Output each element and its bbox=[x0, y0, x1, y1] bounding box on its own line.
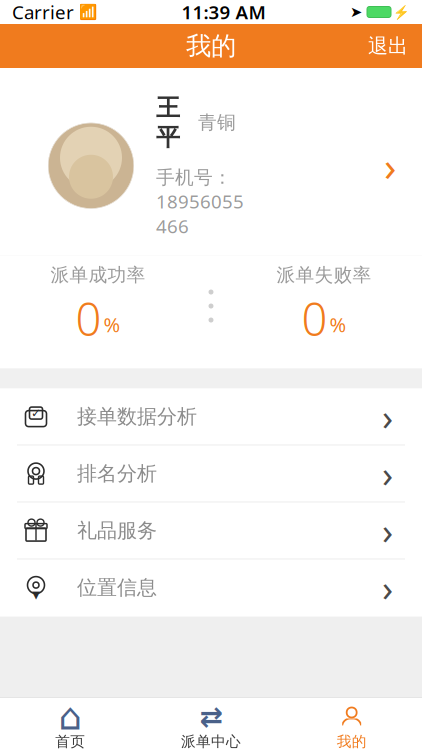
button[interactable]: ⌂ bbox=[0, 697, 141, 750]
staticText: 首页 bbox=[55, 732, 85, 750]
button[interactable]: ✓ bbox=[0, 389, 422, 446]
staticText: 礼品服务 bbox=[77, 518, 157, 543]
staticText: 0 bbox=[301, 288, 327, 349]
staticText: › bbox=[382, 450, 393, 497]
staticText: › bbox=[382, 564, 393, 611]
staticText: ➤ bbox=[350, 4, 362, 20]
staticText: % bbox=[329, 311, 346, 338]
staticText: ⇄ bbox=[199, 701, 222, 732]
button[interactable]: 退出 bbox=[354, 24, 422, 68]
staticText: 手机号：18956055466 bbox=[156, 166, 244, 238]
staticText: 11:39 AM bbox=[181, 0, 265, 24]
staticText: 接单数据分析 bbox=[77, 404, 197, 429]
staticText: ⌂ bbox=[58, 695, 82, 738]
staticText: 我的 bbox=[186, 30, 236, 61]
staticText: ✓ bbox=[31, 406, 41, 420]
staticText: 排名分析 bbox=[77, 461, 157, 486]
staticText: › bbox=[384, 139, 396, 192]
staticText: % bbox=[103, 311, 120, 338]
button[interactable]: 礼品服务 bbox=[0, 503, 422, 560]
staticText: 王平 bbox=[156, 93, 180, 152]
staticText: 0 bbox=[75, 288, 101, 349]
staticText: › bbox=[382, 393, 393, 440]
staticText: ⚡ bbox=[393, 4, 410, 20]
staticText: 我的 bbox=[337, 732, 367, 750]
staticText: 青铜 bbox=[198, 111, 236, 134]
button[interactable]: 王平 bbox=[0, 68, 422, 255]
button[interactable]: ⇄ bbox=[141, 697, 281, 750]
button[interactable]: 我的 bbox=[281, 697, 422, 750]
staticText: 派单成功率 bbox=[50, 263, 145, 286]
staticText: 派单中心 bbox=[181, 732, 241, 750]
staticText: 📶 bbox=[79, 4, 97, 20]
staticText: 派单失败率 bbox=[276, 263, 371, 286]
staticText: 位置信息 bbox=[77, 575, 157, 600]
staticText: › bbox=[382, 507, 393, 554]
staticText: ▾ bbox=[32, 585, 40, 603]
staticText: Carrier bbox=[12, 0, 74, 24]
staticText: 退出 bbox=[368, 34, 408, 58]
button[interactable]: 排名分析 bbox=[0, 446, 422, 503]
button[interactable]: ▾ bbox=[0, 560, 422, 617]
